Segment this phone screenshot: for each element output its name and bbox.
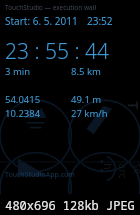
staticText: 480x696 128kb JPEG xyxy=(5,197,135,213)
staticText: To xyxy=(118,101,140,117)
staticText: TouchStudio — execution wall xyxy=(5,3,97,12)
button[interactable]: 23 : 55 : 44 xyxy=(5,37,110,66)
staticText: 27 km/h xyxy=(71,107,108,120)
staticText: 10.2384 xyxy=(5,107,41,120)
staticText: 49.1 m xyxy=(71,93,102,106)
button[interactable]: Start: 6. 5. 2011 xyxy=(5,14,113,28)
staticText: 8.5 km xyxy=(71,65,101,78)
staticText: 23 : 55 : 44 xyxy=(5,37,110,66)
staticText: 3 min xyxy=(5,65,31,78)
staticText: TouchStudioApp.com xyxy=(5,170,75,180)
staticText: 54.0415 xyxy=(5,93,41,106)
staticText: Research xyxy=(101,163,140,179)
staticText: 23:52 xyxy=(87,14,113,28)
button[interactable]: TouchStudioApp.com xyxy=(5,170,75,180)
staticText: Start: 6. 5. 2011 xyxy=(5,14,78,28)
